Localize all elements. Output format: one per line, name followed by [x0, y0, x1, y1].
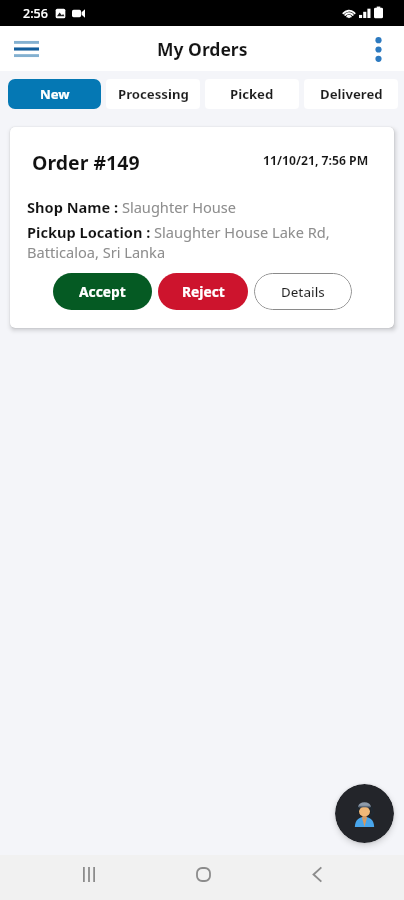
staticText: Shop Name : Slaughter House	[27, 197, 237, 217]
staticText: My Orders	[157, 37, 248, 61]
button[interactable]: Home	[182, 855, 224, 894]
staticText: Picked	[230, 85, 274, 103]
button[interactable]: Delivered	[304, 79, 398, 109]
staticText: Details	[281, 283, 325, 301]
staticText: 2:56	[23, 5, 48, 22]
button[interactable]: Reject	[158, 273, 248, 310]
button[interactable]: Recent apps	[68, 855, 110, 894]
button[interactable]: Contact support	[335, 784, 394, 843]
staticText: Pickup Location : Slaughter House Lake R…	[27, 222, 361, 262]
button[interactable]: More options	[359, 30, 397, 68]
button[interactable]: Picked	[205, 79, 299, 109]
staticText: Reject	[182, 282, 225, 301]
button[interactable]: Back	[296, 855, 338, 894]
staticText: Accept	[79, 282, 126, 301]
button[interactable]: New	[8, 79, 101, 109]
button[interactable]: Details	[254, 273, 352, 310]
staticText: Delivered	[320, 85, 383, 103]
button[interactable]: Processing	[106, 79, 200, 109]
staticText: 11/10/21, 7:56 PM	[263, 152, 369, 169]
button[interactable]: Open navigation menu	[7, 30, 45, 68]
staticText: Processing	[118, 85, 189, 103]
staticText: Order #149	[32, 149, 140, 176]
button[interactable]: Order #149	[10, 127, 394, 328]
button[interactable]: Accept	[53, 273, 152, 310]
staticText: New	[40, 85, 70, 103]
